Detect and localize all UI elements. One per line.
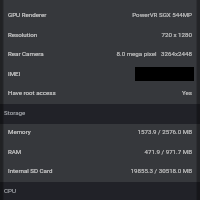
staticText: Memory xyxy=(8,128,31,135)
staticText: Internal SD Card xyxy=(8,167,53,174)
button[interactable]: Internal SD Card xyxy=(0,160,200,180)
button[interactable]: Rear Camera xyxy=(0,43,200,63)
staticText: 1573.9 / 2576.0 MB xyxy=(137,128,192,135)
staticText: Rear Camera xyxy=(8,50,44,57)
staticText: Resolution xyxy=(8,31,38,38)
staticText: Have root access xyxy=(8,89,56,96)
staticText: 19855.3 / 30518.0 MB xyxy=(130,167,192,174)
staticText: RAM xyxy=(8,148,22,155)
button[interactable]: Resolution xyxy=(0,24,200,44)
button[interactable]: GPU Renderer xyxy=(0,4,200,24)
button[interactable]: IMEI xyxy=(0,63,200,83)
staticText: 8.0 mega pixel 3264x2448 xyxy=(116,50,192,57)
staticText: Storage xyxy=(4,109,26,116)
staticText: Yes xyxy=(182,89,192,96)
staticText: 720 x 1280 xyxy=(161,31,192,38)
button[interactable]: Have root access xyxy=(0,82,200,102)
button[interactable]: Memory xyxy=(0,121,200,141)
staticText: IMEI xyxy=(8,70,21,77)
staticText: CPU xyxy=(4,187,16,194)
button[interactable]: RAM xyxy=(0,141,200,161)
staticText: PowerVR SGX 544MP xyxy=(132,11,192,18)
staticText: 471.9 / 971.7 MB xyxy=(144,148,192,155)
staticText: GPU Renderer xyxy=(8,11,47,18)
